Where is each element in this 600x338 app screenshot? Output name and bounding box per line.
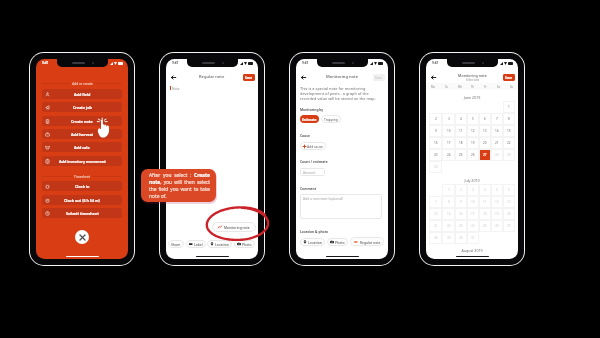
button[interactable]: Create note (42, 116, 122, 126)
staticText: 30 (434, 165, 438, 169)
button[interactable]: 10 (467, 196, 479, 208)
staticText: 28 (434, 236, 438, 240)
button[interactable]: 1 (503, 101, 515, 113)
button[interactable]: Share (168, 240, 184, 248)
button[interactable]: 18 (455, 137, 467, 149)
button[interactable]: Back (169, 73, 177, 81)
staticText: 14 (495, 129, 499, 133)
button[interactable]: Back (299, 73, 307, 81)
button[interactable]: 12 (491, 196, 503, 208)
button[interactable]: 9 (455, 196, 467, 208)
staticText: 12 (471, 129, 475, 133)
button[interactable]: 15 (442, 208, 455, 220)
button[interactable]: 4 (479, 184, 491, 196)
button[interactable]: Photo (234, 240, 255, 248)
button[interactable]: Photo (327, 238, 348, 246)
button[interactable]: 17 (442, 137, 455, 149)
button[interactable]: Estimate (300, 115, 319, 123)
button[interactable]: 23 (429, 149, 442, 161)
button[interactable]: 16 (455, 208, 467, 220)
button[interactable]: 12 (467, 125, 479, 137)
button[interactable]: Location (207, 240, 232, 248)
button[interactable]: 21 (491, 137, 503, 149)
button[interactable]: Close (75, 230, 89, 244)
button[interactable]: 17 (467, 208, 479, 220)
button[interactable]: 11 (455, 125, 467, 137)
button[interactable]: Submit timesheet (42, 208, 122, 218)
button[interactable]: 16 (429, 137, 442, 149)
button[interactable]: 4 (455, 113, 467, 125)
button[interactable]: 24 (442, 149, 455, 161)
button[interactable]: 26 (467, 149, 479, 161)
staticText: Add inventory movement (59, 159, 106, 164)
button[interactable]: Clock in (42, 181, 122, 191)
button[interactable]: Save (503, 74, 515, 81)
button[interactable]: Add a comment (optional) (300, 194, 382, 219)
staticText: 9:41 (302, 61, 309, 65)
button[interactable]: 3 (442, 113, 455, 125)
button[interactable]: 26 (491, 220, 503, 232)
button[interactable]: 13 (479, 125, 491, 137)
button[interactable]: Trapping (321, 115, 341, 123)
button[interactable]: Monitoring note (212, 222, 256, 232)
button[interactable]: 21 (429, 220, 442, 232)
button[interactable]: 24 (467, 220, 479, 232)
button[interactable]: 27 (503, 220, 515, 232)
button[interactable]: 31 (467, 232, 479, 244)
button[interactable]: 13 (503, 196, 515, 208)
button[interactable]: Regular note (350, 237, 384, 246)
button[interactable]: Save (373, 74, 385, 81)
button[interactable]: 15 (503, 125, 515, 137)
button[interactable]: 27 (479, 149, 491, 161)
button[interactable]: Back (429, 73, 437, 81)
button[interactable]: 25 (479, 220, 491, 232)
button[interactable]: Create job (42, 102, 122, 112)
staticText: 23 (459, 224, 463, 228)
button[interactable]: 7 (429, 196, 442, 208)
button[interactable]: 22 (503, 137, 515, 149)
button[interactable]: 19 (467, 137, 479, 149)
button[interactable]: Add cause (300, 142, 326, 150)
button[interactable]: 30 (429, 161, 442, 173)
button[interactable]: Clock out (6 h 54 m) (42, 195, 122, 205)
button[interactable]: 18 (479, 208, 491, 220)
button[interactable]: 2 (455, 184, 467, 196)
button[interactable]: 6 (503, 184, 515, 196)
button[interactable]: Label (186, 240, 206, 248)
staticText: 1 (508, 105, 510, 109)
button[interactable]: 29 (503, 149, 515, 161)
button[interactable]: 22 (442, 220, 455, 232)
button[interactable]: 20 (503, 208, 515, 220)
staticText: 7 (435, 200, 437, 204)
button[interactable]: Save (243, 74, 255, 81)
button[interactable]: 5 (467, 113, 479, 125)
button[interactable]: 19 (491, 208, 503, 220)
button[interactable]: 28 (491, 149, 503, 161)
button[interactable]: Add inventory movement (42, 156, 122, 166)
button[interactable]: 14 (429, 208, 442, 220)
button[interactable]: 3 (467, 184, 479, 196)
button[interactable]: 10 (442, 125, 455, 137)
button[interactable]: 2 (429, 113, 442, 125)
button[interactable]: 30 (455, 232, 467, 244)
button[interactable]: 20 (479, 137, 491, 149)
button[interactable]: 14 (491, 125, 503, 137)
button[interactable]: 6 (479, 113, 491, 125)
button[interactable]: Add harvest (42, 129, 122, 139)
button[interactable]: 29 (442, 232, 455, 244)
button[interactable]: 9 (429, 125, 442, 137)
button[interactable]: 5 (491, 184, 503, 196)
button[interactable]: 1 (442, 184, 455, 196)
button[interactable]: Add cale (42, 142, 122, 152)
button[interactable]: Amount (300, 168, 325, 176)
button[interactable]: 28 (429, 232, 442, 244)
button[interactable]: Location (300, 238, 325, 246)
staticText: 16 (459, 212, 463, 216)
button[interactable]: 8 (503, 113, 515, 125)
button[interactable]: 25 (455, 149, 467, 161)
button[interactable]: 11 (479, 196, 491, 208)
button[interactable]: 8 (442, 196, 455, 208)
button[interactable]: 23 (455, 220, 467, 232)
button[interactable]: Add field (42, 89, 122, 99)
button[interactable]: 7 (491, 113, 503, 125)
